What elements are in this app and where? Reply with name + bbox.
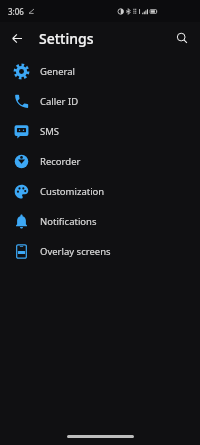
button[interactable]: Search (169, 25, 195, 51)
button[interactable]: Back (4, 25, 30, 51)
button[interactable]: Recorder (0, 146, 200, 176)
staticText: SMS (40, 125, 60, 138)
button[interactable]: Customization (0, 176, 200, 206)
staticText: Caller ID (40, 95, 79, 108)
button[interactable]: General (0, 56, 200, 86)
staticText: Overlay screens (40, 245, 111, 258)
staticText: 3:06 (8, 6, 24, 17)
button[interactable]: Notifications (0, 206, 200, 236)
staticText: Notifications (40, 215, 97, 228)
staticText: Settings (39, 29, 94, 48)
button[interactable]: Overlay screens (0, 236, 200, 266)
staticText: Recorder (40, 155, 81, 168)
staticText: General (40, 65, 76, 78)
button[interactable]: SMS (0, 116, 200, 146)
staticText: Customization (40, 185, 105, 198)
button[interactable]: Caller ID (0, 86, 200, 116)
